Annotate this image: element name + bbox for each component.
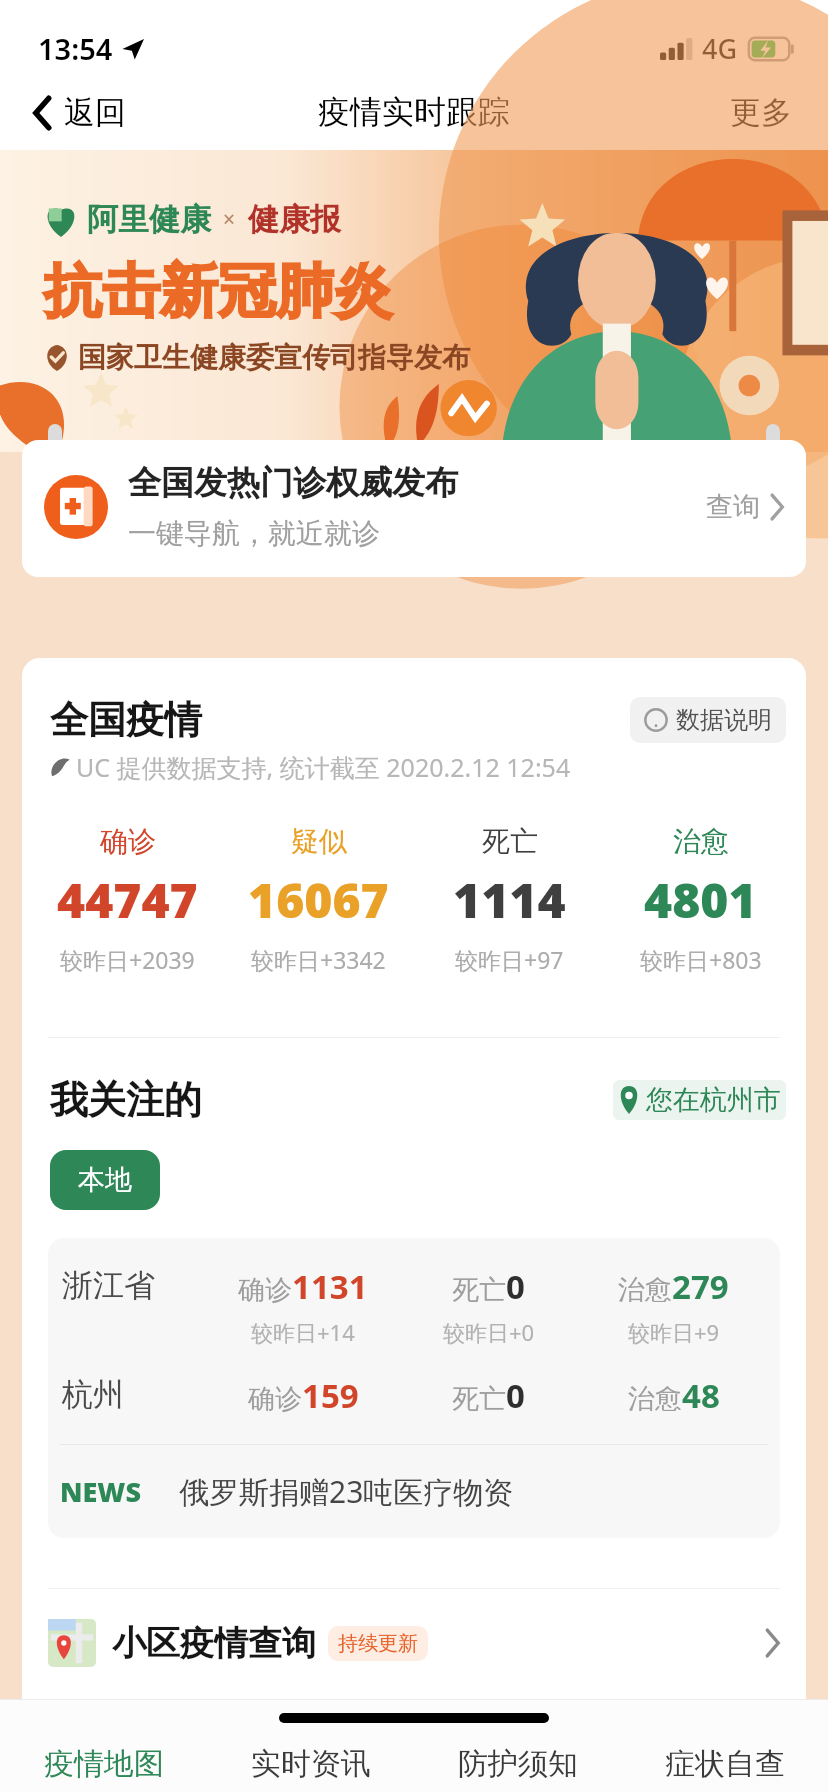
button[interactable]: 更多 [722,85,800,140]
staticText: 死亡 [482,824,538,859]
staticText: 持续更新 [338,1631,418,1656]
staticText: 杭州 [62,1375,210,1414]
staticText: 48 [682,1373,720,1418]
button[interactable]: 症状自查 [621,1736,828,1792]
button[interactable]: NEWS [48,1445,780,1538]
staticText: 较昨日+0 [443,1317,535,1347]
staticText: 防护须知 [458,1745,578,1783]
staticText: 俄罗斯捐赠23吨医疗物资 [179,1471,514,1512]
staticText: 抗击新冠肺炎 [44,255,392,328]
staticText: 全国疫情 [50,696,202,744]
button[interactable]: 您在杭州市 [613,1080,786,1120]
staticText: 治愈 [673,824,729,859]
staticText: 本地 [78,1163,132,1197]
staticText: 死亡 [452,1273,506,1307]
staticText: 全国发热门诊权威发布 [128,462,458,504]
staticText: 44747 [57,867,198,932]
staticText: 症状自查 [665,1745,785,1783]
button[interactable]: 防护须知 [414,1736,621,1792]
button[interactable]: 小区疫情查询 [22,1589,806,1697]
staticText: × [223,205,236,234]
staticText: 阿里健康 [87,200,211,239]
staticText: 您在杭州市 [646,1083,781,1117]
staticText: 13:54 [38,29,113,68]
staticText: 较昨日+803 [640,944,762,975]
staticText: 国家卫生健康委宣传司指导发布 [78,340,470,375]
staticText: 数据说明 [676,705,772,735]
staticText: 确诊 [248,1382,302,1416]
staticText: 疫情地图 [44,1745,164,1783]
staticText: 确诊 [238,1273,292,1307]
button[interactable]: 数据说明 [630,697,786,743]
staticText: 治愈 [618,1273,672,1307]
staticText: UC 提供数据支持, 统计截至 2020.2.12 12:54 [76,750,571,784]
staticText: 较昨日+9 [628,1317,720,1347]
staticText: NEWS [60,1473,141,1510]
staticText: 死亡 [452,1382,506,1416]
staticText: 1114 [453,867,566,932]
staticText: 实时资讯 [251,1745,371,1783]
staticText: 1131 [292,1264,368,1309]
staticText: 浙江省 [62,1266,210,1305]
staticText: 较昨日+2039 [60,944,195,975]
staticText: 我关注的 [50,1076,202,1124]
staticText: 4G [702,30,738,67]
staticText: 疑似 [291,824,347,859]
button[interactable]: 实时资讯 [207,1736,414,1792]
staticText: 279 [672,1264,729,1309]
button[interactable]: 疫情地图 [0,1736,207,1792]
staticText: 159 [302,1373,359,1418]
staticText: 16067 [248,867,389,932]
staticText: 0 [506,1264,525,1309]
staticText: 小区疫情查询 [112,1622,316,1665]
staticText: 健康报 [248,200,341,239]
button[interactable]: 本地 [50,1150,160,1210]
staticText: 疫情实时跟踪 [318,92,510,132]
staticText: 较昨日+14 [251,1317,355,1347]
staticText: 4801 [644,867,757,932]
staticText: 返回 [64,93,126,132]
staticText: 0 [506,1373,525,1418]
staticText: 治愈 [628,1382,682,1416]
staticText: 确诊 [100,824,156,859]
button[interactable]: 全国发热门诊权威发布 [22,440,806,577]
staticText: 一键导航，就近就诊 [128,516,380,551]
button[interactable]: 返回 [26,85,134,140]
staticText: 较昨日+3342 [251,944,386,975]
staticText: 查询 [706,490,760,524]
staticText: 较昨日+97 [455,944,564,975]
